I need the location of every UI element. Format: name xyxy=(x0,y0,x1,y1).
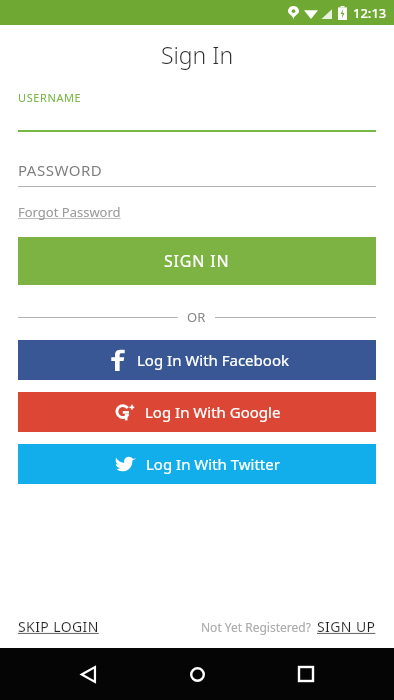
button[interactable]: Forgot Password xyxy=(18,203,121,221)
button[interactable]: Home xyxy=(176,653,218,695)
button[interactable]: Log In With Twitter xyxy=(18,444,376,484)
staticText: OR xyxy=(187,308,206,326)
button[interactable]: SIGN UP xyxy=(317,617,376,636)
button[interactable]: Log In With Google xyxy=(18,392,376,432)
staticText: Not Yet Registered? xyxy=(201,619,311,635)
staticText: SIGN IN xyxy=(164,250,230,272)
staticText: 12:13 xyxy=(353,4,387,22)
staticText: Log In With Twitter xyxy=(146,454,280,474)
staticText: USERNAME xyxy=(18,90,82,105)
staticText: Log In With Facebook xyxy=(137,350,289,370)
button[interactable]: SIGN IN xyxy=(18,237,376,285)
button[interactable]: USERNAME xyxy=(0,90,394,132)
button[interactable]: Back xyxy=(67,653,109,695)
button[interactable]: Overview xyxy=(285,653,327,695)
staticText: Sign In xyxy=(0,39,394,70)
staticText: Forgot Password xyxy=(18,203,121,221)
button[interactable]: Log In With Facebook xyxy=(18,340,376,380)
staticText: PASSWORD xyxy=(18,160,103,180)
button[interactable]: SKIP LOGIN xyxy=(18,617,99,636)
staticText: SKIP LOGIN xyxy=(18,617,99,636)
staticText: SIGN UP xyxy=(317,617,376,636)
button[interactable]: PASSWORD xyxy=(0,160,394,187)
staticText: Log In With Google xyxy=(145,402,281,422)
